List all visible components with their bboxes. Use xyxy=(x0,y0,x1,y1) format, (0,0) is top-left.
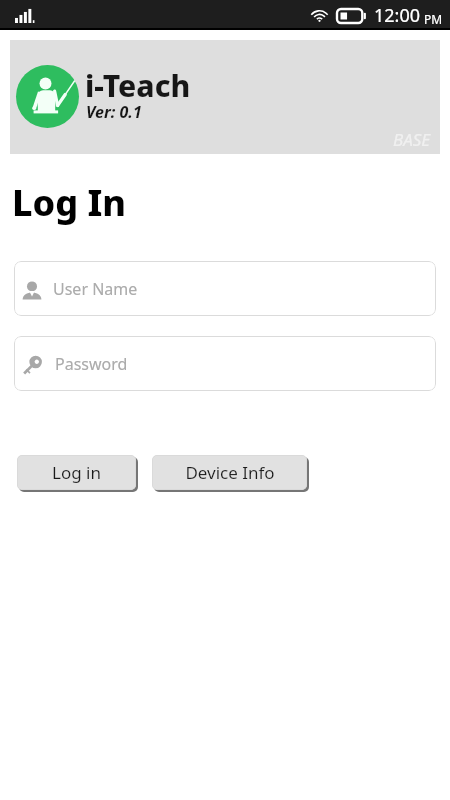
staticText: BASE xyxy=(393,128,431,151)
staticText: Log in xyxy=(52,461,101,484)
staticText: Ver: 0.1 xyxy=(86,101,142,123)
staticText: User Name xyxy=(53,278,138,300)
button[interactable]: Password xyxy=(14,336,436,391)
button[interactable]: Device Info xyxy=(152,455,307,490)
staticText: Log In xyxy=(12,178,127,227)
staticText: PM xyxy=(424,11,443,27)
staticText: i-Teach xyxy=(85,65,191,106)
button[interactable]: Log in xyxy=(17,455,136,490)
staticText: Password xyxy=(55,353,128,375)
staticText: 12:00 xyxy=(374,3,421,28)
button[interactable]: User Name xyxy=(14,261,436,316)
staticText: Device Info xyxy=(185,461,275,484)
